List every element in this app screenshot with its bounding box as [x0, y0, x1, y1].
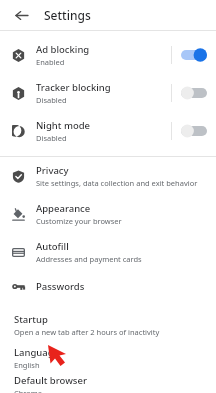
staticText: Settings	[44, 7, 91, 23]
staticText: Startup	[14, 313, 48, 326]
staticText: Open a new tab after 2 hours of inactivi…	[14, 327, 160, 337]
button[interactable]: Startup	[0, 308, 216, 341]
staticText: Site settings, data collection and exit …	[36, 178, 198, 188]
button[interactable]: Night mode toggle	[172, 112, 216, 150]
button[interactable]: Language	[0, 341, 216, 374]
staticText: Autofill	[36, 240, 69, 253]
button[interactable]: Tracker blocking	[0, 74, 216, 112]
staticText: Ad blocking	[36, 43, 90, 56]
staticText: Chrome	[14, 388, 43, 393]
button[interactable]: Back	[8, 2, 34, 28]
staticText: English	[14, 360, 40, 370]
staticText: Appearance	[36, 202, 91, 215]
staticText: Disabled	[36, 95, 67, 105]
button[interactable]: Default browser	[0, 374, 216, 393]
staticText: Customize your browser	[36, 216, 122, 226]
button[interactable]: Privacy	[0, 157, 216, 195]
staticText: Passwords	[36, 280, 85, 293]
button[interactable]: Passwords	[0, 271, 216, 301]
staticText: Enabled	[36, 57, 65, 67]
staticText: Tracker blocking	[36, 81, 111, 94]
staticText: Default browser	[14, 374, 87, 387]
staticText: Night mode	[36, 119, 91, 132]
button[interactable]: Ad blocking	[0, 36, 216, 74]
staticText: Privacy	[36, 164, 69, 177]
button[interactable]: Tracker blocking toggle	[172, 74, 216, 112]
staticText: Addresses and payment cards	[36, 254, 142, 264]
button[interactable]: Night mode	[0, 112, 216, 150]
staticText: Disabled	[36, 133, 67, 143]
button[interactable]: Appearance	[0, 195, 216, 233]
staticText: Language	[14, 346, 60, 359]
button[interactable]: Autofill	[0, 233, 216, 271]
button[interactable]: Ad blocking toggle	[172, 36, 216, 74]
